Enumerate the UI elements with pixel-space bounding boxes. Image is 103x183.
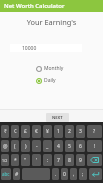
- button[interactable]: *: [11, 154, 19, 166]
- staticText: Net Worth Calculator: [4, 2, 65, 10]
- button[interactable]: Enter: [89, 168, 102, 180]
- staticText: Monthly: [44, 65, 64, 72]
- staticText: 5: [68, 143, 71, 150]
- button[interactable]: 4: [54, 140, 63, 152]
- button[interactable]: ₹: [1, 125, 9, 138]
- staticText: Your Earning's: [0, 17, 103, 27]
- staticText: Daily: [44, 77, 56, 84]
- button[interactable]: 2: [65, 125, 74, 138]
- staticText: 1/2: [2, 158, 8, 163]
- button[interactable]: 8: [65, 154, 74, 166]
- button[interactable]: 1: [54, 125, 63, 138]
- staticText: ;: [82, 171, 84, 178]
- staticText: 7: [57, 157, 60, 164]
- button[interactable]: Net Worth Calculator: [0, 0, 103, 12]
- button[interactable]: 9: [76, 154, 85, 166]
- button[interactable]: NEXT: [46, 113, 69, 122]
- staticText: £: [24, 128, 27, 135]
- button[interactable]: 7: [54, 154, 63, 166]
- button[interactable]: ¥: [43, 125, 52, 138]
- button[interactable]: 6: [76, 140, 85, 152]
- staticText: ₹: [4, 128, 7, 135]
- staticText: ': [36, 157, 38, 164]
- staticText: 6: [79, 143, 82, 150]
- button[interactable]: 5: [65, 140, 74, 152]
- button[interactable]: ?: [87, 125, 102, 138]
- button[interactable]: (: [11, 140, 19, 152]
- staticText: *: [14, 157, 17, 164]
- button[interactable]: ;: [79, 168, 87, 180]
- staticText: 1: [57, 128, 60, 135]
- button[interactable]: ,: [70, 168, 77, 180]
- staticText: €: [35, 128, 38, 135]
- staticText: ¢: [14, 128, 17, 135]
- button[interactable]: Monthly: [36, 63, 64, 74]
- button[interactable]: -: [32, 140, 41, 152]
- staticText: 9: [79, 157, 82, 164]
- staticText: ": [24, 157, 27, 164]
- staticText: !: [94, 143, 96, 150]
- button[interactable]: ': [32, 154, 41, 166]
- staticText: 3: [79, 128, 82, 135]
- button[interactable]: ): [21, 140, 30, 152]
- staticText: 8: [68, 157, 71, 164]
- staticText: #: [15, 171, 19, 178]
- button[interactable]: 10000: [10, 44, 82, 52]
- button[interactable]: _: [43, 140, 52, 152]
- button[interactable]: Daily: [36, 75, 56, 86]
- staticText: 4: [57, 143, 60, 150]
- staticText: .: [55, 171, 57, 178]
- button[interactable]: 1/2: [1, 154, 9, 166]
- button[interactable]: 0: [61, 168, 68, 180]
- button[interactable]: :: [43, 154, 52, 166]
- button[interactable]: .: [52, 168, 59, 180]
- staticText: ,: [73, 171, 75, 178]
- button[interactable]: Backspace: [87, 154, 102, 166]
- staticText: (: [14, 143, 16, 150]
- staticText: @: [3, 143, 8, 150]
- staticText: ¥: [46, 128, 49, 135]
- button[interactable]: ": [21, 154, 30, 166]
- button[interactable]: £: [21, 125, 30, 138]
- staticText: NEXT: [52, 115, 63, 120]
- staticText: ): [25, 143, 27, 150]
- button[interactable]: ¢: [11, 125, 19, 138]
- staticText: 2: [68, 128, 71, 135]
- staticText: 0: [63, 171, 66, 178]
- button[interactable]: @: [1, 140, 9, 152]
- staticText: -: [36, 143, 38, 150]
- button[interactable]: !: [87, 140, 102, 152]
- button[interactable]: abc: [1, 168, 11, 180]
- button[interactable]: #: [13, 168, 20, 180]
- staticText: 10000: [22, 45, 37, 52]
- staticText: _: [46, 143, 49, 150]
- staticText: ?: [93, 128, 96, 135]
- button[interactable]: €: [32, 125, 41, 138]
- button[interactable]: 3: [76, 125, 85, 138]
- staticText: abc: [2, 171, 10, 177]
- staticText: :: [47, 157, 49, 164]
